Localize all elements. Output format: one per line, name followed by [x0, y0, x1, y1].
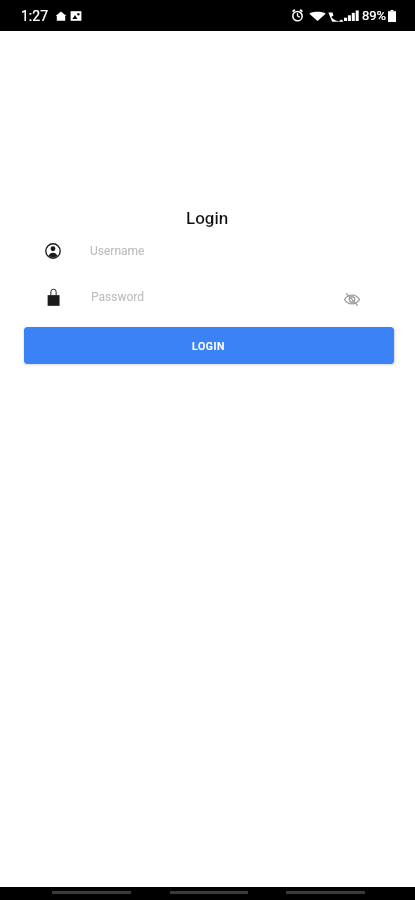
- staticText: Username: [90, 244, 145, 258]
- button[interactable]: LOGIN: [24, 327, 394, 364]
- button[interactable]: Show password: [335, 280, 369, 314]
- button[interactable]: Username: [0, 234, 415, 268]
- staticText: Login: [186, 208, 229, 228]
- staticText: 1:27: [21, 8, 48, 24]
- staticText: LOGIN: [192, 340, 226, 352]
- staticText: Password: [91, 290, 145, 304]
- button[interactable]: Password: [0, 280, 415, 314]
- staticText: 89%: [362, 8, 387, 23]
